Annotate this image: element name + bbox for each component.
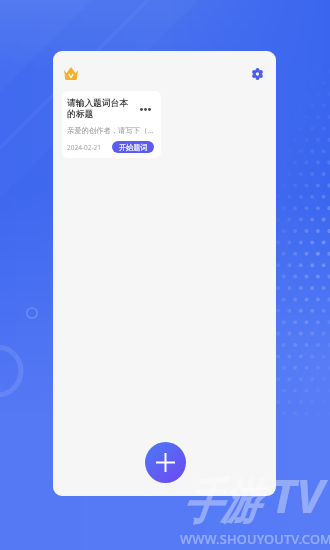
button[interactable]: 开始题词 xyxy=(112,141,154,153)
staticText: WWW.SHOUYOUTV.COM xyxy=(180,530,330,547)
button[interactable]: Settings xyxy=(246,63,268,85)
staticText: 开始题词 xyxy=(119,143,148,152)
button[interactable]: Add new script xyxy=(145,442,186,483)
staticText: TV xyxy=(271,463,324,527)
staticText: 亲爱的创作者，请写下（... xyxy=(67,125,160,135)
button[interactable]: VIP membership xyxy=(60,62,82,84)
staticText: 手游 xyxy=(183,472,259,532)
button[interactable]: 请输入题词台本的标题 xyxy=(62,91,161,158)
staticText: 2024-02-21 xyxy=(67,143,101,152)
button[interactable]: More options xyxy=(136,100,154,118)
staticText: 请输入题词台本的标题 xyxy=(67,98,130,120)
